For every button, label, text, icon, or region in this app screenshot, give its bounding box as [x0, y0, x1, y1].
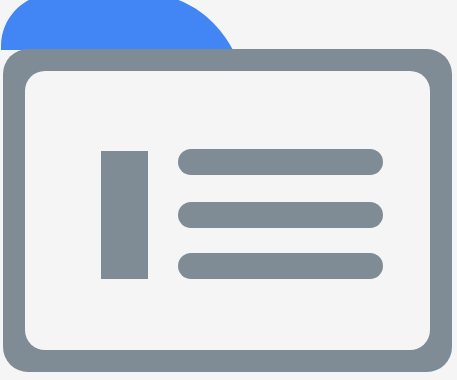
- button[interactable]: Folder with document list: [0, 0, 457, 380]
